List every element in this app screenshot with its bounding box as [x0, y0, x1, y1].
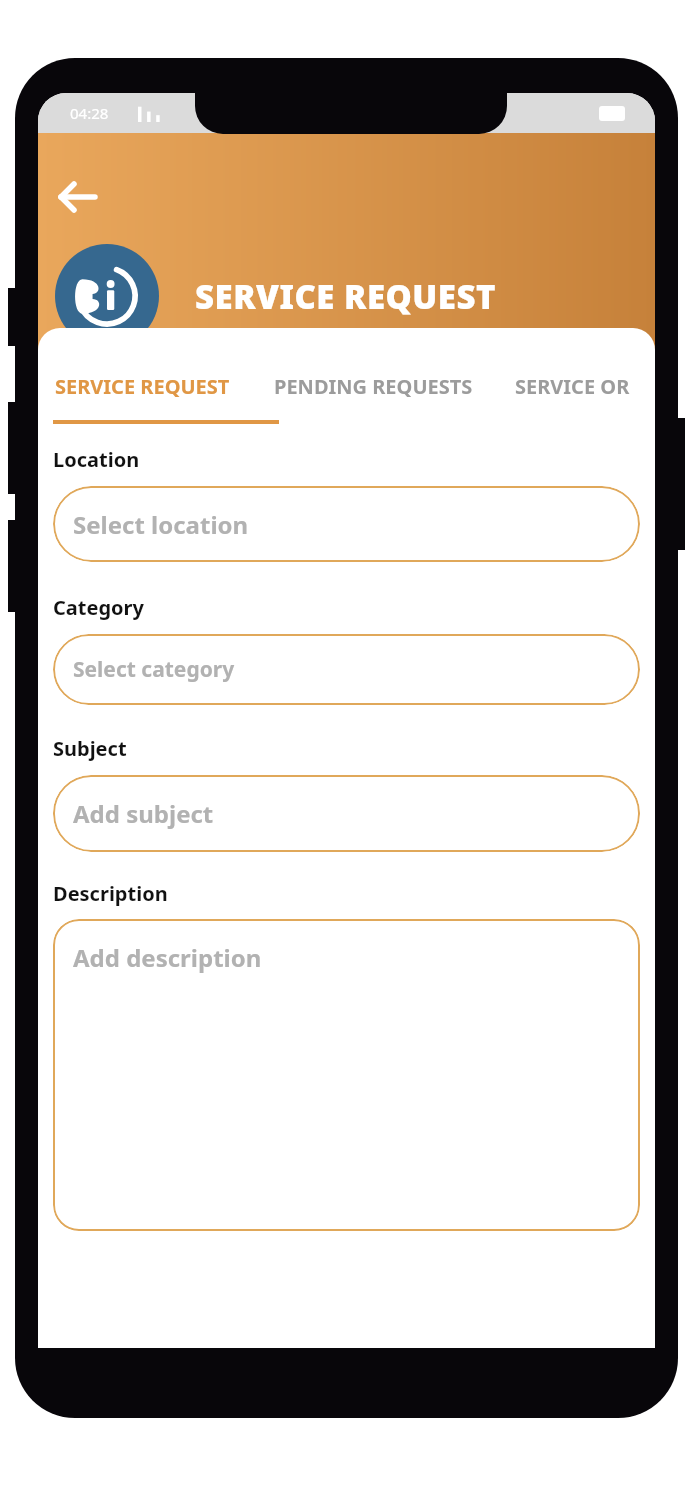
staticText: SERVICE REQUEST: [55, 373, 230, 400]
button[interactable]: PENDING REQUESTS: [272, 359, 475, 414]
staticText: Category: [53, 594, 144, 621]
staticText: Subject: [53, 735, 127, 762]
staticText: Add description: [73, 941, 262, 974]
button[interactable]: SERVICE REQUEST: [53, 359, 232, 414]
staticText: Select location: [73, 508, 249, 541]
staticText: Description: [53, 880, 168, 907]
button[interactable]: Back: [58, 178, 98, 216]
staticText: PENDING REQUESTS: [274, 373, 473, 400]
staticText: SERVICE REQUEST: [195, 274, 496, 319]
staticText: Select category: [73, 655, 235, 684]
button[interactable]: SERVICE OR: [513, 359, 632, 414]
staticText: Add subject: [73, 797, 214, 830]
staticText: 04:28: [70, 103, 109, 123]
button[interactable]: Select category: [53, 634, 640, 705]
staticText: Location: [53, 446, 140, 473]
button[interactable]: Select location: [53, 486, 640, 562]
button[interactable]: Add description: [53, 919, 640, 1231]
button[interactable]: Add subject: [53, 775, 640, 852]
staticText: SERVICE OR: [515, 373, 630, 400]
